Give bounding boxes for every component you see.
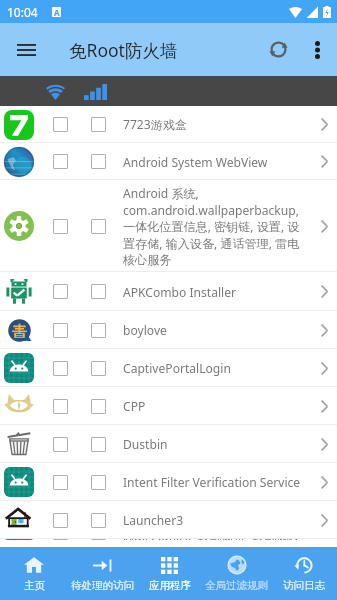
button[interactable]: 全局过滤规则 — [203, 547, 270, 600]
staticText: CaptivePortalLogin — [123, 360, 308, 376]
button[interactable]: Select app wifi — [83, 463, 113, 501]
button[interactable]: Select app — [38, 311, 83, 349]
button[interactable]: Select app — [0, 387, 337, 425]
staticText: 7723游戏盒 — [123, 116, 308, 133]
button[interactable]: Select app wifi — [83, 539, 113, 540]
staticText: Intent Filter Verification Service — [123, 474, 308, 490]
button[interactable]: Select app — [0, 501, 337, 539]
button[interactable]: Select app — [38, 539, 83, 540]
button[interactable]: 主页 — [0, 547, 68, 600]
button[interactable]: Select app wifi — [83, 143, 113, 180]
staticText: 主页 — [24, 579, 45, 592]
button[interactable]: Select app wifi — [83, 501, 113, 539]
staticText: 全局过滤规则 — [205, 579, 268, 592]
staticText: A — [54, 7, 60, 17]
button[interactable]: 访问日志 — [270, 547, 337, 600]
button[interactable]: Select app wifi — [83, 106, 113, 143]
button[interactable]: Menu — [0, 23, 52, 76]
staticText: Dustbin — [123, 436, 308, 452]
button[interactable]: Select app — [0, 272, 337, 311]
button[interactable]: 待处理的访问 — [68, 547, 136, 600]
button[interactable]: Select app — [38, 463, 83, 501]
button[interactable]: 应用程序 — [136, 547, 203, 600]
button[interactable]: Select app — [38, 501, 83, 539]
button[interactable]: Select app — [38, 425, 83, 463]
staticText: 免Root防火墙 — [69, 38, 178, 62]
staticText: APKCombo Installer — [123, 284, 308, 300]
button[interactable]: More options — [301, 23, 334, 76]
button[interactable]: Select app — [0, 106, 337, 143]
button[interactable]: Select app — [38, 180, 83, 272]
button[interactable]: Select app — [38, 106, 83, 143]
staticText: 待处理的访问 — [71, 579, 134, 592]
button[interactable]: Select app wifi — [83, 272, 113, 311]
button[interactable]: Select app wifi — [83, 349, 113, 387]
button[interactable]: Select app — [0, 463, 337, 501]
button[interactable]: Select app — [38, 387, 83, 425]
button[interactable]: Select app — [0, 311, 337, 349]
button[interactable]: Select app wifi — [83, 311, 113, 349]
button[interactable]: Select app — [0, 425, 337, 463]
staticText: boylove — [123, 322, 308, 338]
button[interactable]: Select app — [0, 539, 337, 540]
button[interactable]: Select app — [0, 180, 337, 272]
button[interactable]: Select app wifi — [83, 180, 113, 272]
staticText: 访问日志 — [283, 579, 325, 592]
button[interactable]: Select app — [0, 143, 337, 180]
button[interactable]: Select app — [38, 272, 83, 311]
button[interactable]: Select app — [38, 349, 83, 387]
staticText: Launcher3 — [123, 512, 308, 528]
button[interactable]: Refresh — [258, 23, 299, 76]
staticText: 应用程序 — [149, 579, 191, 592]
staticText: Android 系统, com.android.wallpaperbackup,… — [123, 185, 308, 268]
button[interactable]: Select app — [38, 143, 83, 180]
button[interactable]: Select app wifi — [83, 387, 113, 425]
button[interactable]: Select app wifi — [83, 425, 113, 463]
staticText: MmsService, 移动数据, 移动网络 — [123, 539, 337, 540]
button[interactable]: Select app — [0, 349, 337, 387]
staticText: Android System WebView — [123, 154, 308, 170]
staticText: CPP — [123, 398, 308, 414]
staticText: 10:04 — [7, 4, 38, 20]
